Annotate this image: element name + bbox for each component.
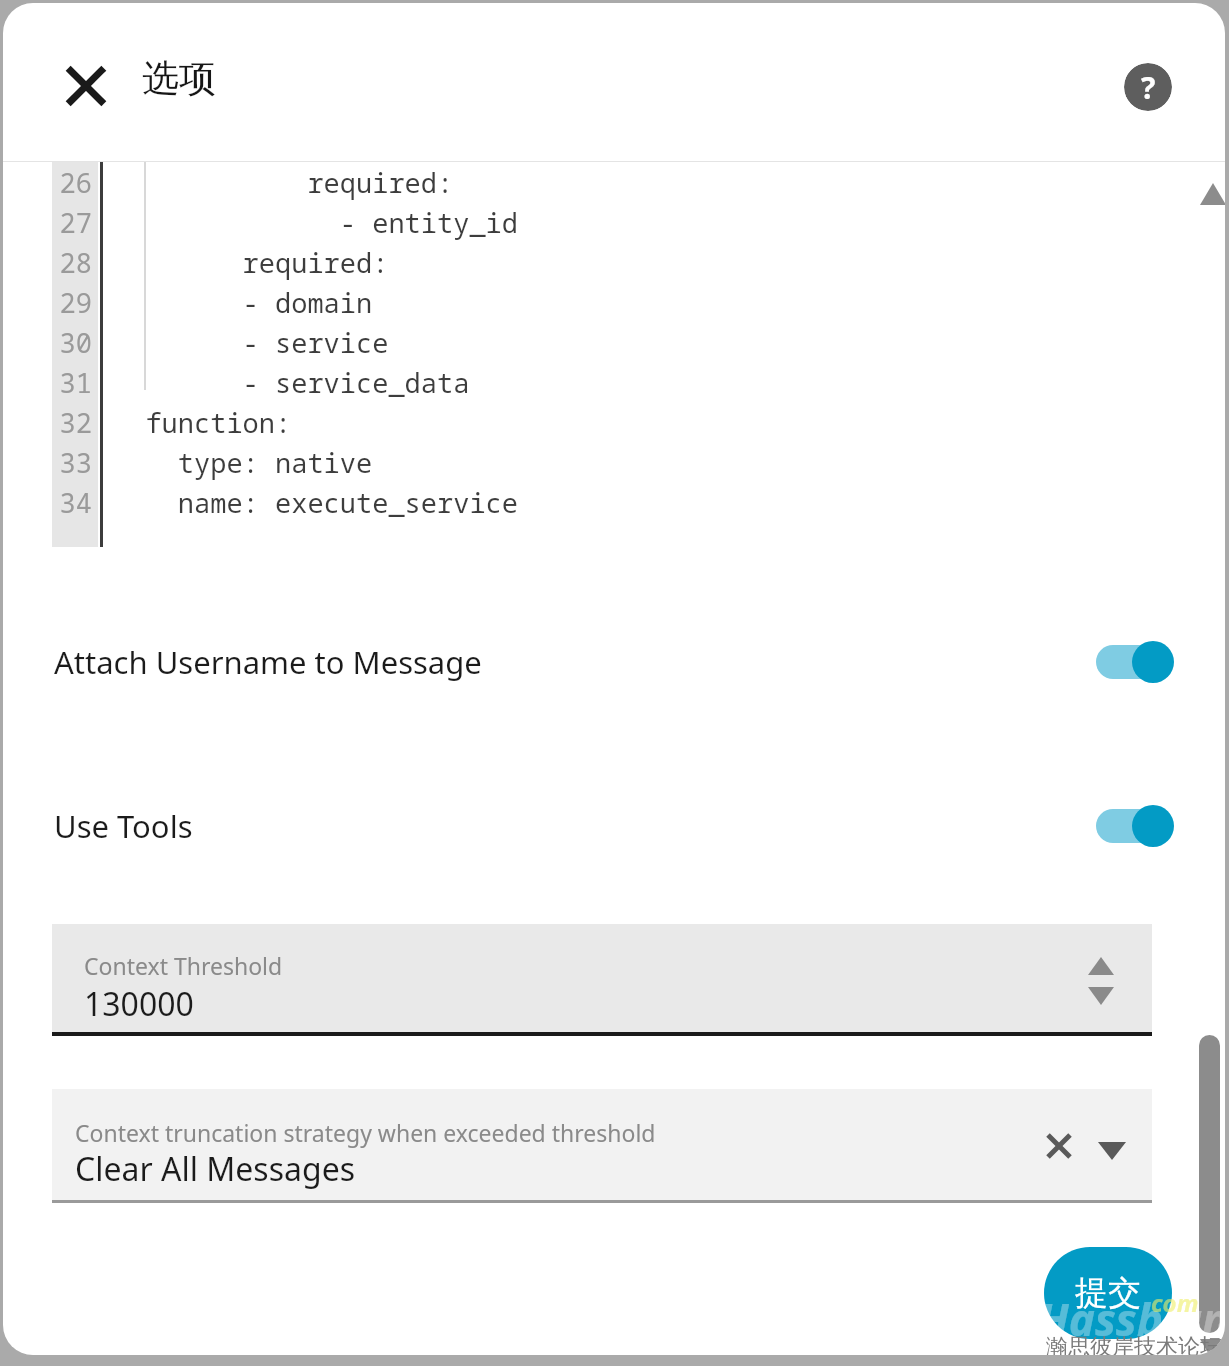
- staticText: 选项: [142, 55, 216, 102]
- button[interactable]: Clear: [1037, 1124, 1081, 1168]
- button[interactable]: Close: [54, 54, 118, 118]
- staticText: Context truncation strategy when exceede…: [75, 1117, 656, 1148]
- staticText: - domain: [113, 284, 373, 321]
- staticText: 31: [52, 364, 92, 401]
- staticText: Clear All Messages: [75, 1147, 356, 1191]
- staticText: name: execute_service: [113, 484, 518, 521]
- staticText: 32: [52, 404, 92, 441]
- staticText: 29: [52, 284, 92, 321]
- staticText: 瀚思彼岸技术论坛: [1046, 1333, 1222, 1355]
- button[interactable]: Attach Username to Message: [54, 624, 1174, 700]
- staticText: Context Threshold: [84, 950, 283, 981]
- button[interactable]: Scroll: [1199, 1035, 1220, 1333]
- staticText: type: native: [113, 444, 373, 481]
- button[interactable]: Help: [1124, 63, 1172, 111]
- staticText: 33: [52, 444, 92, 481]
- staticText: function:: [113, 404, 292, 441]
- staticText: - service: [113, 324, 389, 361]
- staticText: 26: [52, 164, 92, 201]
- staticText: Attach Username to Message: [54, 641, 482, 683]
- staticText: - entity_id: [113, 204, 518, 241]
- button[interactable]: Context Threshold: [52, 924, 1152, 1036]
- button[interactable]: Use Tools: [54, 788, 1174, 864]
- staticText: Hassbian: [1038, 1289, 1225, 1349]
- staticText: - service_data: [113, 364, 470, 401]
- staticText: 28: [52, 244, 92, 281]
- staticText: 130000: [84, 982, 194, 1026]
- staticText: 30: [52, 324, 92, 361]
- staticText: required:: [113, 244, 389, 281]
- staticText: Use Tools: [54, 805, 193, 847]
- button[interactable]: Open dropdown: [1092, 1129, 1132, 1169]
- staticText: 27: [52, 204, 92, 241]
- staticText: ?: [1141, 67, 1156, 108]
- staticText: com: [1151, 1286, 1199, 1319]
- staticText: 34: [52, 484, 92, 521]
- button[interactable]: Context truncation strategy when exceede…: [52, 1089, 1152, 1203]
- staticText: required:: [113, 164, 454, 201]
- staticText: 提交: [1075, 1272, 1141, 1314]
- button[interactable]: 提交: [1044, 1247, 1172, 1339]
